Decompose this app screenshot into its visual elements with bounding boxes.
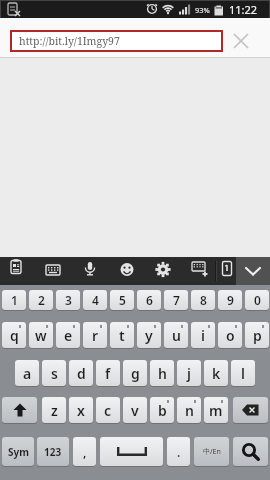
staticText: k [212,364,221,383]
staticText: , [83,444,87,460]
staticText: b [158,401,167,420]
button[interactable] [149,257,177,285]
button[interactable]: s [42,360,66,386]
button[interactable]: t [110,322,134,348]
button[interactable]: 2 [29,290,53,310]
button[interactable]: v [123,397,147,423]
button[interactable]: g [123,360,147,386]
button[interactable] [233,397,268,423]
staticText: h [158,364,167,383]
button[interactable]: 1 [2,290,26,310]
staticText: a [23,364,32,383]
button[interactable]: b [150,397,174,423]
staticText: l [241,364,245,383]
staticText: o [226,326,235,345]
button[interactable]: a [15,360,39,386]
button[interactable]: z [42,397,66,423]
staticText: u [172,326,181,345]
staticText: 9 [227,292,234,308]
staticText: 3 [65,292,72,308]
staticText: x [77,401,85,420]
button[interactable]: 123 [37,437,69,466]
staticText: 中/En [203,447,221,457]
button[interactable]: l [231,360,255,386]
staticText: g [131,364,140,383]
staticText: w [35,326,47,345]
button[interactable]: http://bit.ly/1Imgy97 [10,30,223,52]
button[interactable]: 6 [137,290,161,310]
staticText: y [145,326,153,345]
staticText: 0 [254,292,261,308]
staticText: p [253,326,262,345]
staticText: z [51,401,58,420]
staticText: f [105,364,111,383]
staticText: j [187,364,191,383]
button[interactable]: 8 [191,290,215,310]
button[interactable]: 9 [218,290,242,310]
staticText: n [185,401,194,420]
staticText: d [77,364,86,383]
button[interactable] [100,437,163,466]
button[interactable] [39,257,67,285]
staticText: e [64,326,73,345]
button[interactable] [2,397,37,423]
button[interactable]: h [150,360,174,386]
button[interactable]: 4 [83,290,107,310]
button[interactable]: w [29,322,53,348]
button[interactable] [113,257,141,285]
staticText: 5 [119,292,126,308]
staticText: 1 [11,292,18,308]
staticText: c [104,401,112,420]
button[interactable] [185,257,213,285]
staticText: t [119,326,125,345]
button[interactable]: f [96,360,120,386]
staticText: 93% [195,5,210,15]
staticText: m [209,401,223,420]
button[interactable]: u [164,322,188,348]
button[interactable]: d [69,360,93,386]
staticText: 6 [146,292,153,308]
button[interactable]: c [96,397,120,423]
button[interactable] [2,257,30,285]
staticText: http://bit.ly/1Imgy97 [19,34,120,48]
button[interactable]: Sym [2,437,34,466]
button[interactable] [232,32,250,50]
staticText: 2 [38,292,45,308]
button[interactable]: j [177,360,201,386]
button[interactable]: i [191,322,215,348]
button[interactable]: m [204,397,228,423]
button[interactable]: k [204,360,228,386]
staticText: 8 [200,292,207,308]
button[interactable]: o [218,322,242,348]
staticText: 7 [173,292,180,308]
staticText: r [92,326,99,345]
staticText: 11:22 [229,2,258,17]
staticText: . [177,444,181,460]
staticText: 123 [44,445,62,459]
button[interactable] [233,437,268,466]
button[interactable] [236,257,270,285]
button[interactable]: 中/En [194,437,229,466]
staticText: 4 [92,292,99,308]
button[interactable]: y [137,322,161,348]
button[interactable]: p [245,322,269,348]
button[interactable]: , [73,437,96,466]
button[interactable]: r [83,322,107,348]
button[interactable] [213,257,241,285]
button[interactable]: 7 [164,290,188,310]
button[interactable]: 0 [245,290,269,310]
button[interactable]: e [56,322,80,348]
staticText: i [201,326,205,345]
button[interactable] [76,257,104,285]
staticText: q [10,326,19,345]
button[interactable]: 3 [56,290,80,310]
button[interactable]: q [2,322,26,348]
button[interactable]: n [177,397,201,423]
staticText: v [131,401,139,420]
staticText: Sym [8,445,29,459]
button[interactable]: 5 [110,290,134,310]
button[interactable]: . [167,437,190,466]
button[interactable]: x [69,397,93,423]
staticText: s [51,364,58,383]
